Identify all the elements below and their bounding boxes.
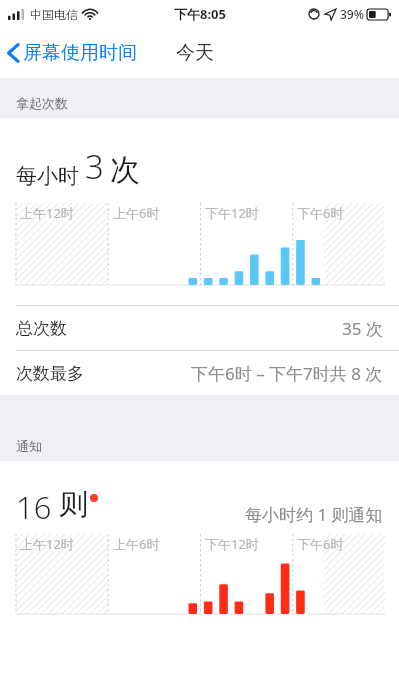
staticText: 通知 (16, 438, 42, 454)
staticText: 下午8:05 (174, 5, 226, 23)
staticText: 39% (340, 6, 364, 22)
staticText: 上午12时 (20, 535, 74, 553)
button[interactable]: 总次数 (0, 306, 399, 350)
staticText: 上午6时 (113, 535, 160, 553)
staticText: 下午6时 – 下午7时共 8 次 (191, 362, 383, 385)
staticText: 总次数 (16, 318, 67, 339)
staticText: 下午12时 (205, 204, 259, 222)
staticText: 35 次 (342, 317, 383, 340)
staticText: 下午6时 (297, 535, 344, 553)
staticText: 屏幕使用时间 (23, 41, 137, 65)
staticText: 16 (16, 486, 52, 528)
staticText: 3 (85, 144, 104, 189)
staticText: 下午6时 (297, 204, 344, 222)
button[interactable]: 次数最多 (0, 351, 399, 395)
staticText: 今天 (176, 41, 214, 65)
staticText: 则 (59, 486, 88, 523)
staticText: 每小时约 1 则通知 (245, 503, 383, 526)
staticText: 次数最多 (16, 363, 84, 384)
staticText: 拿起次数 (16, 95, 68, 111)
staticText: 次 (110, 151, 140, 189)
button[interactable]: 屏幕使用时间 (0, 35, 143, 71)
staticText: 上午6时 (113, 204, 160, 222)
staticText: 每小时 (16, 163, 79, 189)
staticText: 上午12时 (20, 204, 74, 222)
staticText: 中国电信 (30, 7, 78, 22)
staticText: 下午12时 (205, 535, 259, 553)
